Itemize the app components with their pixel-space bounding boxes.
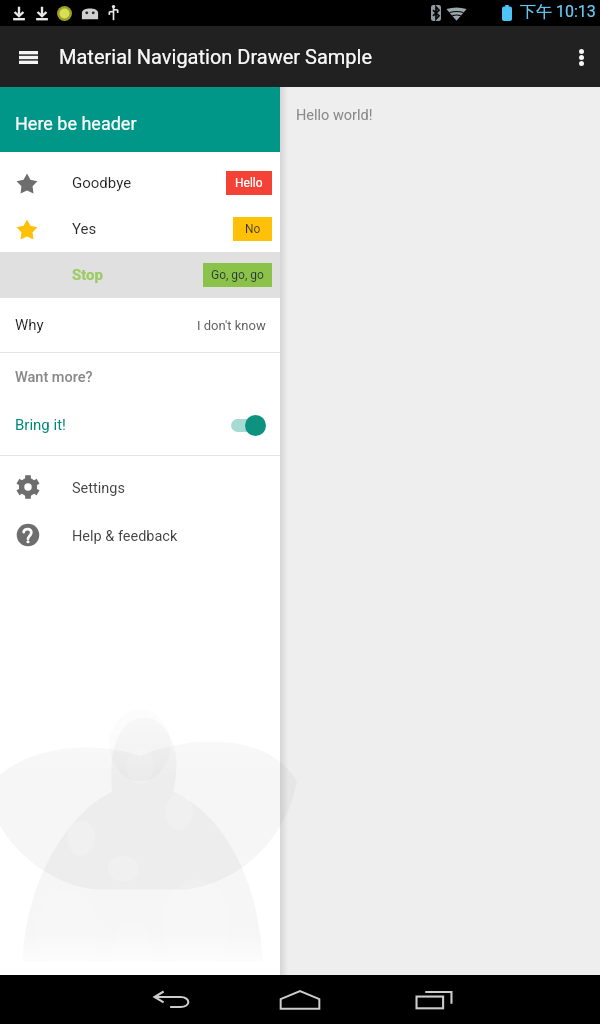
staticText: Bring it! <box>15 416 66 434</box>
staticText: Go, go, go <box>211 268 264 282</box>
button[interactable]: More options <box>562 38 600 76</box>
staticText: 下午 10:13 <box>520 2 596 22</box>
button[interactable]: Yes <box>0 206 280 252</box>
button[interactable]: Bring it! <box>0 401 280 449</box>
staticText: Here be header <box>15 113 137 134</box>
button[interactable]: Settings <box>0 463 280 511</box>
staticText: Why <box>15 316 44 334</box>
button[interactable]: Back <box>144 975 200 1024</box>
button[interactable]: Recents <box>406 975 462 1024</box>
button[interactable]: Goodbye <box>0 160 280 206</box>
staticText: Help & feedback <box>72 528 178 545</box>
button[interactable]: Open navigation drawer <box>9 38 47 76</box>
button[interactable]: Stop <box>0 252 280 298</box>
staticText: Want more? <box>15 369 93 386</box>
button[interactable]: Here be header <box>0 87 280 152</box>
staticText: Goodbye <box>72 174 132 192</box>
button[interactable]: Home <box>272 975 328 1024</box>
staticText: Hello <box>235 176 263 190</box>
staticText: Yes <box>72 220 97 238</box>
staticText: Hello world! <box>296 107 373 124</box>
staticText: Material Navigation Drawer Sample <box>59 45 373 68</box>
button[interactable]: Help & feedback <box>0 511 280 559</box>
button[interactable]: Why <box>0 298 280 352</box>
staticText: I don't know <box>197 318 266 333</box>
staticText: No <box>245 222 261 236</box>
staticText: Settings <box>72 480 125 497</box>
staticText: Stop <box>72 266 104 284</box>
